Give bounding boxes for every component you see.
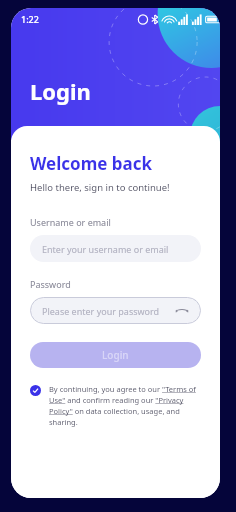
button[interactable]: By continuing, you agree to our "Terms o… (30, 384, 201, 427)
button[interactable]: Show password (175, 304, 189, 318)
staticText: By continuing, you agree to our "Terms o… (49, 384, 201, 427)
button[interactable]: Please enter your password (30, 297, 201, 324)
staticText: Username or email (30, 216, 111, 228)
staticText: Password (30, 278, 71, 290)
button[interactable]: Login (30, 342, 201, 368)
staticText: Hello there, sign in to continue! (30, 181, 170, 194)
staticText: Please enter your password (42, 305, 160, 317)
staticText: 1:22 (21, 13, 39, 25)
staticText: Enter your username or email (42, 243, 169, 255)
button[interactable]: Enter your username or email (30, 235, 201, 262)
staticText: Welcome back (30, 152, 153, 175)
staticText: Login (102, 348, 129, 362)
staticText: Login (30, 76, 91, 106)
